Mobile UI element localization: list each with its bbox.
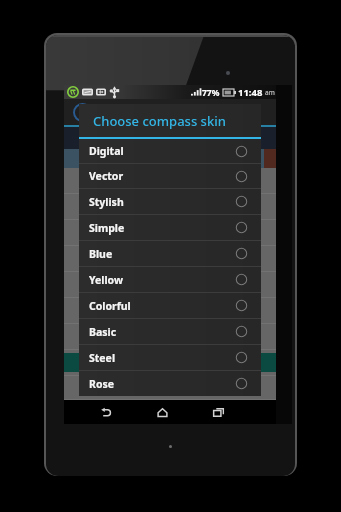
- staticText: Basic: [89, 325, 236, 339]
- staticText: Blue: [89, 247, 236, 261]
- staticText: am: [265, 88, 275, 97]
- button[interactable]: Recent apps: [200, 400, 236, 424]
- button[interactable]: Vector: [79, 164, 261, 188]
- button[interactable]: Rose: [79, 371, 261, 396]
- button[interactable]: Simple: [79, 215, 261, 240]
- staticText: Simple: [89, 221, 236, 235]
- staticText: Stylish: [89, 195, 236, 209]
- staticText: 11:48: [238, 86, 263, 99]
- staticText: Digital: [89, 144, 236, 158]
- staticText: Vector: [89, 169, 236, 183]
- staticText: Steel: [89, 351, 236, 365]
- button[interactable]: Back: [88, 400, 124, 424]
- button[interactable]: Digital: [79, 139, 261, 163]
- button[interactable]: Steel: [79, 345, 261, 370]
- button[interactable]: Colorful: [79, 293, 261, 318]
- staticText: 77%: [202, 87, 220, 99]
- button[interactable]: Blue: [79, 241, 261, 266]
- button[interactable]: Stylish: [79, 189, 261, 214]
- button[interactable]: Home: [144, 400, 180, 424]
- staticText: Yellow: [89, 273, 236, 287]
- button[interactable]: Yellow: [79, 267, 261, 292]
- staticText: Colorful: [89, 299, 236, 313]
- staticText: Rose: [89, 377, 236, 391]
- staticText: Choose compass skin: [93, 112, 226, 130]
- button[interactable]: Basic: [79, 319, 261, 344]
